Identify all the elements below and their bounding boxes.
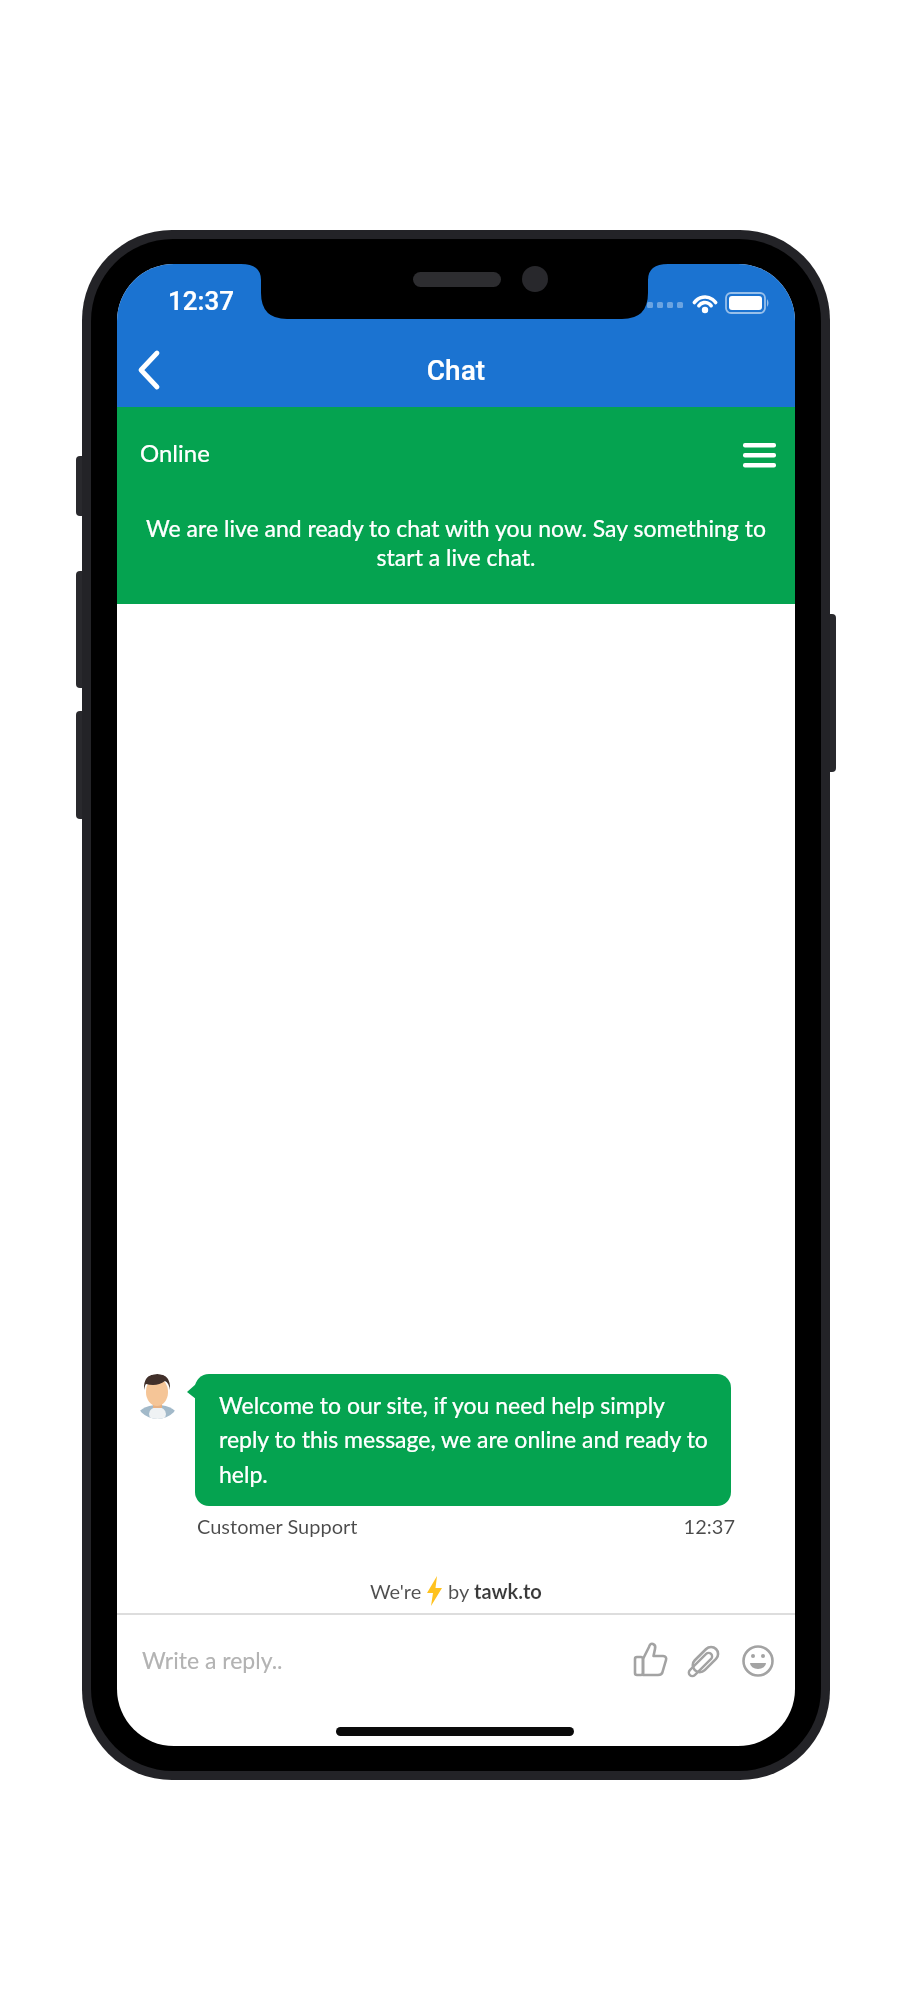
staticText: Chat <box>117 354 795 394</box>
staticText: We're <box>370 1579 427 1603</box>
button[interactable] <box>679 1639 729 1687</box>
staticText: 12:37 <box>535 1514 735 1544</box>
staticText: Customer Support <box>197 1514 358 1538</box>
button[interactable] <box>734 1639 782 1687</box>
button[interactable] <box>125 349 175 395</box>
button[interactable]: Write a reply.. <box>117 1624 577 1694</box>
staticText: by <box>443 1579 474 1603</box>
staticText: Welcome to our site, if you need help si… <box>219 1391 719 1488</box>
staticText: Write a reply.. <box>142 1646 283 1674</box>
staticText: tawk.to <box>474 1579 542 1603</box>
button[interactable] <box>627 1639 677 1687</box>
staticText: 12:37 <box>168 286 235 316</box>
staticText: Online <box>140 438 210 467</box>
staticText: We are live and ready to chat with you n… <box>137 514 775 578</box>
button[interactable] <box>733 432 785 478</box>
